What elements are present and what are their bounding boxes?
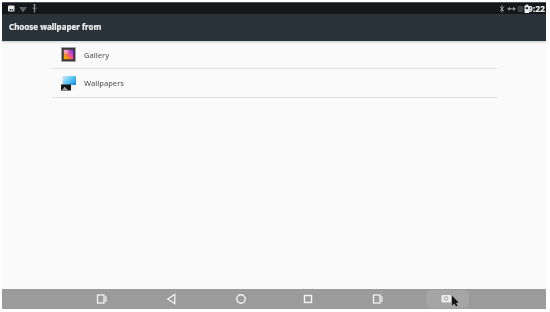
button[interactable] — [156, 289, 188, 309]
staticText: 9:22 — [528, 3, 546, 14]
staticText: Choose wallpaper from — [9, 21, 102, 32]
button[interactable]: Wallpapers — [2, 69, 546, 97]
button[interactable]: Gallery — [2, 41, 546, 68]
staticText: Wallpapers — [84, 78, 124, 88]
staticText: Gallery — [84, 50, 110, 60]
button[interactable] — [426, 290, 469, 308]
button[interactable] — [86, 289, 118, 309]
button[interactable] — [225, 289, 257, 309]
button[interactable] — [292, 289, 324, 309]
button[interactable] — [362, 289, 394, 309]
